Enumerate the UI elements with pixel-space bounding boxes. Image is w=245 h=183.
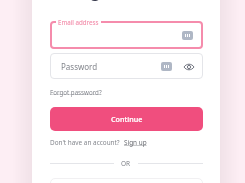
button[interactable]: Sign up xyxy=(124,138,147,147)
staticText: Password xyxy=(61,61,98,72)
staticText: Continue xyxy=(111,114,143,124)
button[interactable]: Password xyxy=(50,53,203,79)
button[interactable]: Autofill xyxy=(182,31,193,40)
staticText: Sign in xyxy=(77,0,131,2)
button[interactable]: Continue xyxy=(50,107,203,131)
staticText: OR xyxy=(121,159,131,168)
staticText: Sign up xyxy=(124,138,147,147)
button[interactable]: Show password xyxy=(182,60,195,73)
staticText: Forgot password? xyxy=(50,88,102,96)
button[interactable]: Autofill xyxy=(50,21,203,49)
button[interactable]: Autofill xyxy=(161,62,172,71)
staticText: Email address xyxy=(58,18,99,26)
staticText: Don't have an account? xyxy=(50,138,120,147)
button[interactable]: Forgot password? xyxy=(50,88,102,96)
button[interactable] xyxy=(50,178,203,183)
